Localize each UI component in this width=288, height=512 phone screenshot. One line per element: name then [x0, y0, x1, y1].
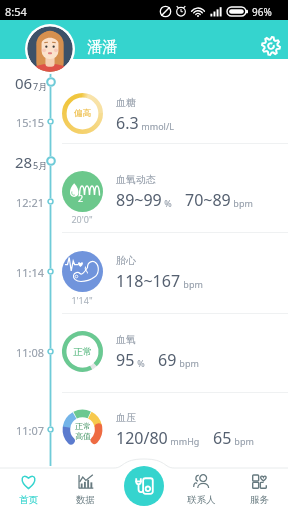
staticText: 潘潘 [87, 38, 117, 57]
staticText: 正常 [73, 346, 92, 358]
staticText: 联系人 [187, 494, 216, 506]
staticText: mmHg [168, 435, 200, 447]
staticText: 8:54 [5, 4, 27, 19]
button[interactable] [0, 329, 288, 373]
button[interactable]: Measure [124, 466, 164, 506]
staticText: 12:21 [6, 195, 44, 210]
staticText: 11:14 [6, 265, 44, 280]
button[interactable] [0, 407, 288, 451]
staticText: 6.3 [116, 112, 139, 134]
staticText: 血氧 [116, 333, 136, 346]
staticText: 血压 [116, 411, 136, 424]
staticText: bpm [181, 278, 203, 290]
staticText: 120/80 [116, 427, 168, 449]
staticText: 69 [158, 349, 177, 371]
button[interactable]: 联系人 [172, 468, 230, 512]
staticText: % [135, 357, 145, 369]
staticText: 95 [116, 349, 135, 371]
staticText: 正常 [75, 421, 91, 431]
button[interactable]: 数据 [57, 468, 114, 512]
staticText: 65 [213, 427, 232, 449]
button[interactable] [0, 250, 288, 294]
staticText: bpm [177, 357, 199, 369]
staticText: 服务 [250, 494, 269, 506]
button[interactable]: Settings [256, 31, 285, 60]
staticText: mmol/L [139, 120, 175, 132]
staticText: 70~89 [185, 189, 231, 211]
button[interactable] [0, 92, 288, 136]
staticText: 高值 [75, 431, 91, 441]
staticText: 1'14" [58, 294, 106, 306]
button[interactable] [0, 169, 288, 213]
staticText: 血氧动态 [116, 173, 156, 186]
staticText: 偏高 [74, 108, 91, 119]
staticText: 2 [78, 192, 84, 204]
staticText: 首页 [19, 494, 38, 506]
staticText: % [162, 197, 172, 209]
staticText: 11:08 [6, 345, 44, 360]
staticText: bpm [231, 197, 253, 209]
staticText: 数据 [76, 494, 95, 506]
staticText: 5月 [33, 159, 48, 171]
staticText: 15:15 [6, 115, 44, 130]
staticText: 89~99 [116, 189, 162, 211]
button[interactable]: 首页 [0, 468, 57, 512]
staticText: 7月 [33, 80, 48, 92]
staticText: 20'0" [58, 213, 106, 225]
staticText: 96% [252, 5, 272, 19]
staticText: bpm [232, 435, 254, 447]
staticText: 28 [15, 152, 33, 172]
button[interactable]: 服务 [230, 468, 288, 512]
staticText: 11:07 [6, 423, 44, 438]
staticText: 血糖 [116, 96, 136, 109]
staticText: 118~167 [116, 270, 181, 292]
staticText: 06 [15, 73, 33, 93]
staticText: 胎心 [116, 254, 136, 267]
